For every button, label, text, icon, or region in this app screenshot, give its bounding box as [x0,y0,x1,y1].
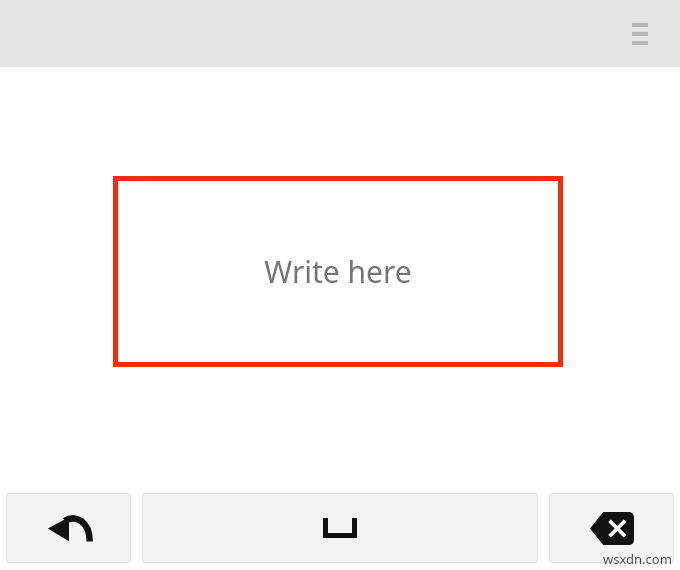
button[interactable]: Space [142,493,538,563]
staticText: Write here [264,251,412,292]
button[interactable]: Menu [624,14,656,54]
staticText: wsxdn.com [603,550,672,568]
button[interactable]: Backspace [549,493,674,563]
button[interactable]: Write here [113,176,563,367]
button[interactable]: Undo [6,493,131,563]
